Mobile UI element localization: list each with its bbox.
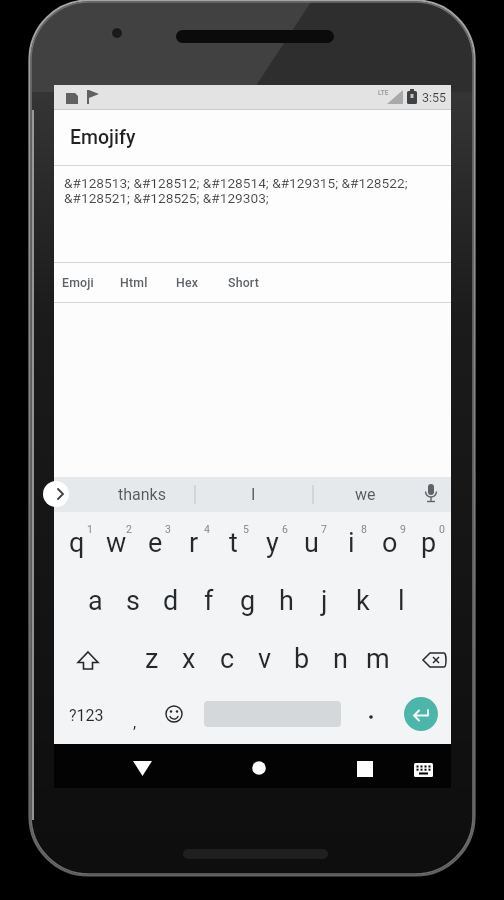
staticText: Html bbox=[120, 276, 148, 290]
staticText: m bbox=[366, 643, 390, 675]
staticText: 9 bbox=[400, 523, 406, 535]
staticText: e bbox=[148, 527, 163, 559]
staticText: 3 bbox=[165, 523, 171, 535]
button[interactable]: Emoji bbox=[50, 263, 106, 302]
staticText: q bbox=[69, 527, 85, 559]
button[interactable]: y bbox=[255, 512, 289, 570]
staticText: thanks bbox=[118, 485, 166, 504]
button[interactable]: Hex bbox=[159, 263, 215, 302]
staticText: p bbox=[421, 527, 437, 559]
button[interactable]: m bbox=[361, 628, 395, 686]
button[interactable]: s bbox=[116, 570, 150, 628]
staticText: f bbox=[204, 585, 214, 617]
staticText: r bbox=[189, 527, 199, 559]
button[interactable] bbox=[404, 686, 438, 738]
button[interactable]: z bbox=[135, 628, 169, 686]
staticText: z bbox=[145, 643, 159, 675]
staticText: 6 bbox=[282, 523, 288, 535]
staticText: 4 bbox=[204, 523, 210, 535]
staticText: j bbox=[321, 585, 328, 617]
staticText: 8 bbox=[361, 523, 367, 535]
staticText: , bbox=[133, 713, 137, 732]
button[interactable]: x bbox=[172, 628, 206, 686]
staticText: w bbox=[106, 527, 127, 559]
button[interactable]: w bbox=[99, 512, 133, 570]
button[interactable]: o bbox=[373, 512, 407, 570]
staticText: y bbox=[266, 527, 279, 559]
button[interactable]: I bbox=[208, 477, 298, 512]
staticText: &#128513; &#128512; &#128514; &#129315; … bbox=[64, 175, 408, 206]
staticText: b bbox=[294, 643, 310, 675]
button[interactable] bbox=[54, 477, 80, 512]
button[interactable]: i bbox=[334, 512, 368, 570]
button[interactable]: h bbox=[269, 570, 303, 628]
staticText: l bbox=[398, 585, 405, 617]
staticText: n bbox=[333, 643, 348, 675]
button[interactable]: p bbox=[412, 512, 446, 570]
button[interactable]: b bbox=[285, 628, 319, 686]
button[interactable]: , bbox=[124, 686, 146, 744]
button[interactable]: c bbox=[210, 628, 244, 686]
button[interactable]: r bbox=[177, 512, 211, 570]
button[interactable]: we bbox=[320, 477, 410, 512]
button[interactable] bbox=[157, 686, 191, 744]
button[interactable] bbox=[411, 477, 451, 512]
button[interactable] bbox=[349, 744, 385, 788]
staticText: x bbox=[182, 643, 196, 675]
button[interactable]: l bbox=[384, 570, 418, 628]
staticText: 1 bbox=[87, 523, 93, 535]
staticText: 2 bbox=[126, 523, 132, 535]
button[interactable]: u bbox=[294, 512, 328, 570]
button[interactable] bbox=[125, 628, 177, 686]
button[interactable]: v bbox=[248, 628, 282, 686]
staticText: LTE bbox=[378, 89, 389, 97]
button[interactable]: Html bbox=[106, 263, 162, 302]
button[interactable]: e bbox=[138, 512, 172, 570]
staticText: k bbox=[356, 585, 370, 617]
staticText: Emojify bbox=[70, 126, 136, 149]
staticText: u bbox=[304, 527, 319, 559]
button[interactable] bbox=[241, 744, 277, 788]
staticText: 3:55 bbox=[422, 90, 447, 105]
button[interactable] bbox=[204, 686, 341, 738]
staticText: ?123 bbox=[69, 706, 104, 725]
staticText: we bbox=[355, 485, 376, 504]
button[interactable]: f bbox=[192, 570, 226, 628]
button[interactable]: a bbox=[78, 570, 112, 628]
button[interactable] bbox=[405, 744, 441, 788]
staticText: 0 bbox=[439, 523, 445, 535]
staticText: a bbox=[88, 585, 103, 617]
button[interactable]: q bbox=[60, 512, 94, 570]
staticText: s bbox=[126, 585, 140, 617]
button[interactable] bbox=[459, 628, 504, 686]
staticText: d bbox=[163, 585, 179, 617]
staticText: o bbox=[382, 527, 398, 559]
button[interactable]: ?123 bbox=[60, 686, 112, 744]
button[interactable] bbox=[54, 166, 451, 262]
button[interactable]: n bbox=[323, 628, 357, 686]
staticText: g bbox=[240, 585, 256, 617]
staticText: t bbox=[229, 527, 238, 559]
staticText: c bbox=[220, 643, 235, 675]
staticText: i bbox=[348, 527, 355, 559]
button[interactable]: Short bbox=[215, 263, 271, 302]
staticText: 5 bbox=[243, 523, 249, 535]
button[interactable]: t bbox=[216, 512, 250, 570]
staticText: Emoji bbox=[62, 276, 94, 290]
staticText: h bbox=[279, 585, 294, 617]
button[interactable]: thanks bbox=[97, 477, 187, 512]
staticText: 7 bbox=[321, 523, 327, 535]
staticText: I bbox=[251, 485, 256, 504]
staticText: v bbox=[258, 643, 272, 675]
button[interactable]: d bbox=[154, 570, 188, 628]
staticText: Short bbox=[228, 276, 259, 290]
button[interactable]: k bbox=[346, 570, 380, 628]
button[interactable]: g bbox=[231, 570, 265, 628]
staticText: Hex bbox=[176, 276, 199, 290]
button[interactable]: j bbox=[307, 570, 341, 628]
button[interactable] bbox=[125, 744, 161, 788]
